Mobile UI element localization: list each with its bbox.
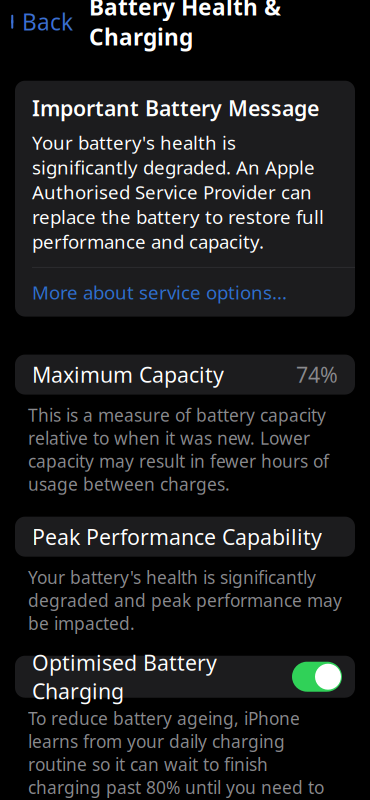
staticText: This is a measure of battery capacity re… [28,404,329,496]
staticText: Optimised Battery Charging [32,648,217,705]
button[interactable]: Optimised Battery Charging [15,656,355,698]
button[interactable]: Back [0,1,79,43]
staticText: Maximum Capacity [32,360,224,389]
staticText: More about service options... [32,280,287,305]
staticText: Battery Health & Charging [89,0,281,52]
staticText: Your battery's health is significantly d… [28,566,342,635]
staticText: 74% [296,360,338,389]
button[interactable]: More about service options... [15,268,355,317]
staticText: Peak Performance Capability [32,522,322,551]
staticText: Back [22,7,73,37]
staticText: Your battery's health is significantly d… [32,130,324,254]
staticText: Important Battery Message [32,94,319,122]
staticText: To reduce battery ageing, iPhone learns … [28,707,324,800]
